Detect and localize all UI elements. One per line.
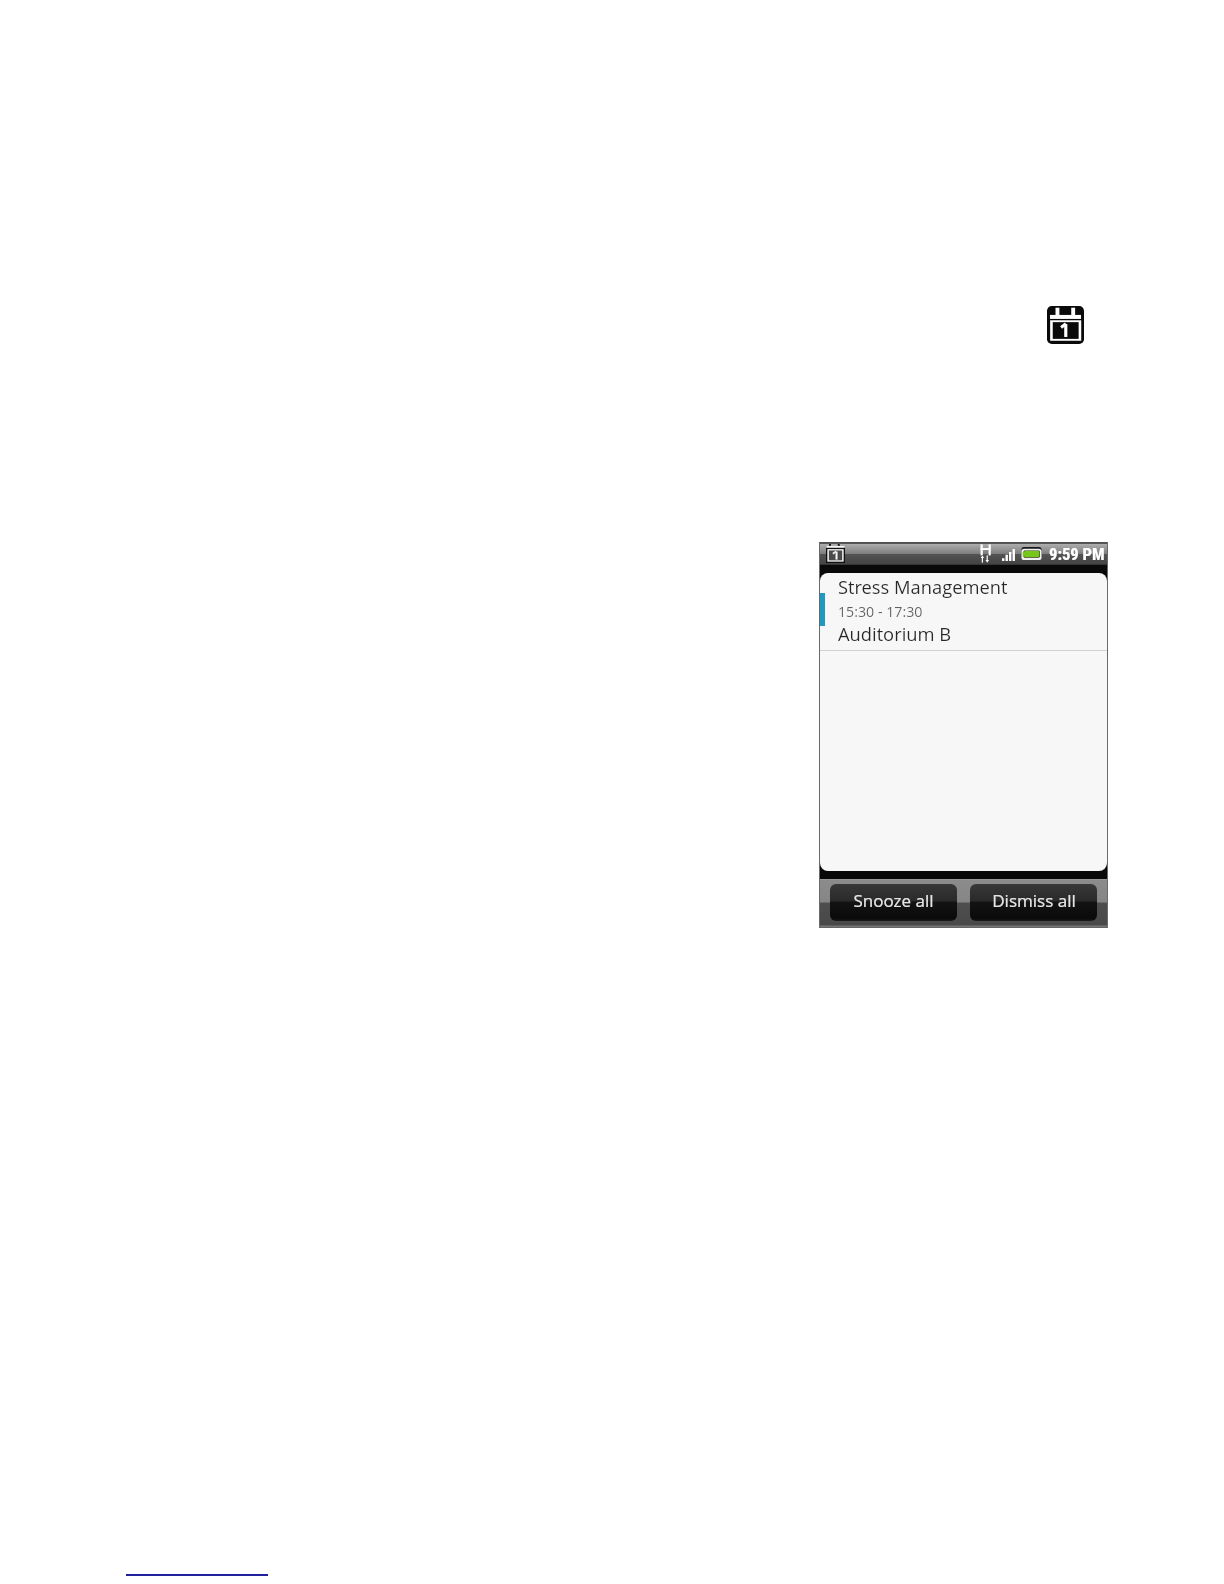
button[interactable]: Dismiss all [970,884,1097,921]
button[interactable]: Calendar [1047,306,1084,344]
button[interactable]: Snooze all [830,884,957,921]
button[interactable]: Stress Management [820,573,1107,650]
staticText: 9:59 PM [1049,545,1105,564]
staticText: Auditorium B [838,621,952,646]
staticText: Stress Management [838,574,1008,599]
other: Calendar notification [826,544,845,563]
other: HSPA data connection [980,544,991,563]
staticText: Dismiss all [992,889,1076,912]
staticText: Snooze all [853,889,934,912]
other: Battery [1021,547,1042,560]
staticText: 15:30 - 17:30 [838,602,923,621]
other: Signal strength [1002,548,1015,561]
